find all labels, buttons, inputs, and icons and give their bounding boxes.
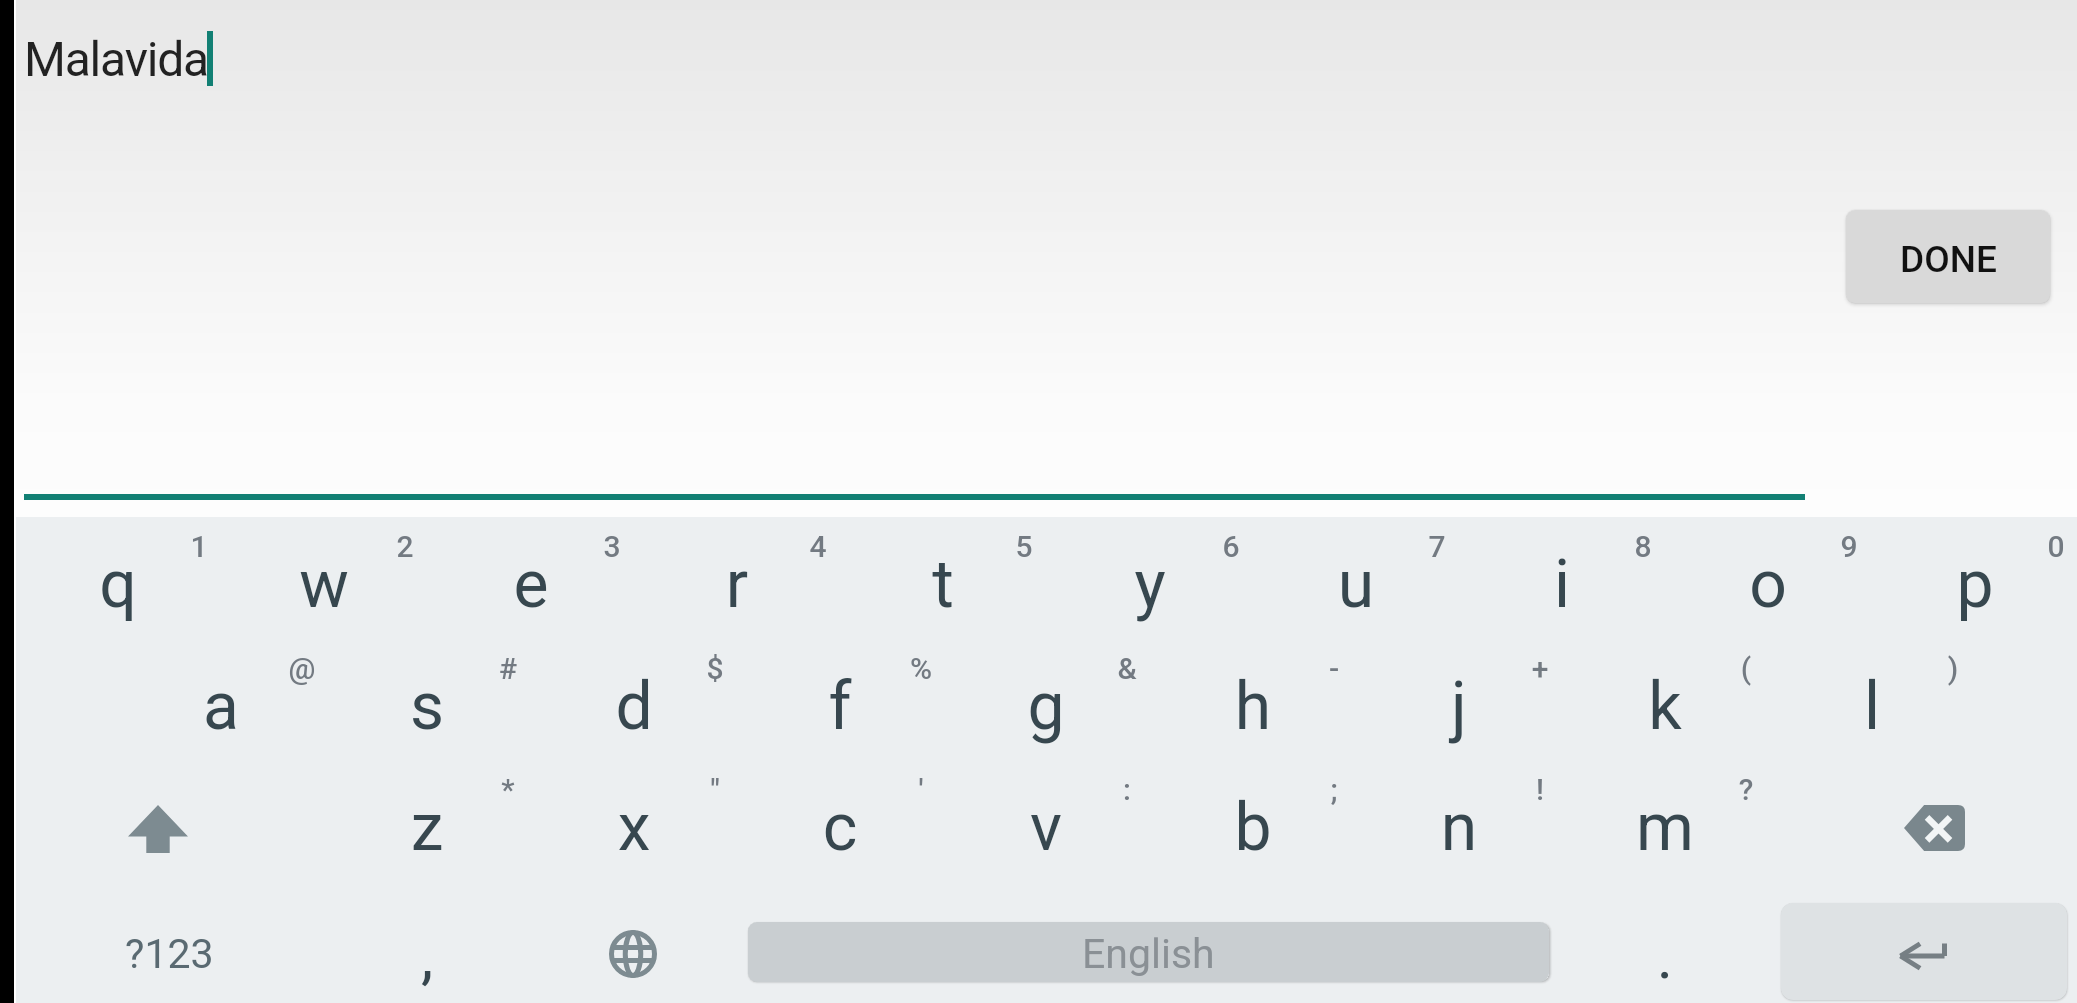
button[interactable]: v [943,760,1149,882]
staticText: ( [1706,651,1786,686]
staticText: 1 [159,529,239,564]
staticText: d [531,668,737,790]
staticText: ; [1294,772,1374,807]
button[interactable]: t [840,517,1046,639]
staticText: & [1087,651,1167,686]
staticText: 0 [2016,529,2077,564]
staticText: n [1356,789,1562,911]
staticText: i [1459,546,1665,668]
staticText: English [1082,930,1215,978]
staticText: p [1872,546,2077,668]
button[interactable]: . [1562,882,1768,1003]
staticText: s [324,668,530,790]
button[interactable]: w [221,517,427,639]
staticText: # [468,651,548,686]
staticText: . [1562,920,1768,1003]
staticText: u [1253,546,1459,668]
staticText: f [737,668,943,790]
button[interactable]: s [324,639,530,761]
button[interactable]: z [324,760,530,882]
staticText: ? [1706,772,1786,807]
staticText: r [634,546,840,668]
staticText: a [118,668,324,790]
button[interactable]: k [1562,639,1768,761]
button[interactable]: ?123 [15,882,324,1003]
staticText: e [428,546,634,668]
button[interactable]: m [1562,760,1768,882]
button[interactable]: DONE [1846,210,2050,303]
staticText: 5 [984,529,1064,564]
button[interactable]: q [15,517,221,639]
button[interactable]: e [428,517,634,639]
staticText: w [221,546,427,668]
staticText: l [1769,668,1975,790]
staticText: $ [675,651,755,686]
button[interactable]: a [118,639,324,761]
staticText: j [1356,668,1562,790]
staticText: 4 [778,529,858,564]
button[interactable]: p [1872,517,2077,639]
button[interactable]: , [324,882,530,1003]
staticText: Malavida [24,31,208,87]
button[interactable]: Backspace [1769,760,2077,882]
button[interactable]: f [737,639,943,761]
staticText: - [1294,651,1374,686]
button[interactable]: c [737,760,943,882]
staticText: 2 [365,529,445,564]
button[interactable]: d [531,639,737,761]
staticText: v [943,789,1149,911]
button[interactable]: r [634,517,840,639]
staticText: x [531,789,737,911]
staticText: ! [1500,772,1580,807]
staticText: 6 [1191,529,1271,564]
staticText: y [1047,546,1253,668]
button[interactable]: g [943,639,1149,761]
staticText: z [324,789,530,911]
staticText: @ [262,651,342,686]
staticText: c [737,789,943,911]
staticText: k [1562,668,1768,790]
staticText: DONE [1900,238,1997,281]
button[interactable]: j [1356,639,1562,761]
staticText: , [324,920,530,1003]
staticText: h [1150,668,1356,790]
staticText: t [840,546,1046,668]
staticText: % [881,651,961,686]
staticText: m [1562,789,1768,911]
staticText: " [675,772,755,807]
staticText: : [1087,772,1167,807]
staticText: ) [1913,651,1993,686]
button[interactable]: Shift [15,760,324,882]
button[interactable]: h [1150,639,1356,761]
button[interactable]: x [531,760,737,882]
button[interactable]: y [1047,517,1253,639]
button[interactable]: i [1459,517,1665,639]
button[interactable]: English [748,922,1549,982]
staticText: * [468,772,548,807]
staticText: q [15,546,221,668]
staticText: 9 [1809,529,1889,564]
staticText: 3 [572,529,652,564]
staticText: + [1500,651,1580,686]
button[interactable]: Change keyboard language [531,882,737,1003]
staticText: 7 [1397,529,1477,564]
staticText: ?123 [125,930,214,978]
button[interactable]: n [1356,760,1562,882]
staticText: g [943,668,1149,790]
staticText: ' [881,772,961,807]
button[interactable]: l [1769,639,1975,761]
staticText: 8 [1603,529,1683,564]
staticText: b [1150,789,1356,911]
button[interactable]: Enter [1781,903,2067,1000]
button[interactable]: b [1150,760,1356,882]
button[interactable]: u [1253,517,1459,639]
button[interactable]: o [1665,517,1871,639]
staticText: o [1665,546,1871,668]
